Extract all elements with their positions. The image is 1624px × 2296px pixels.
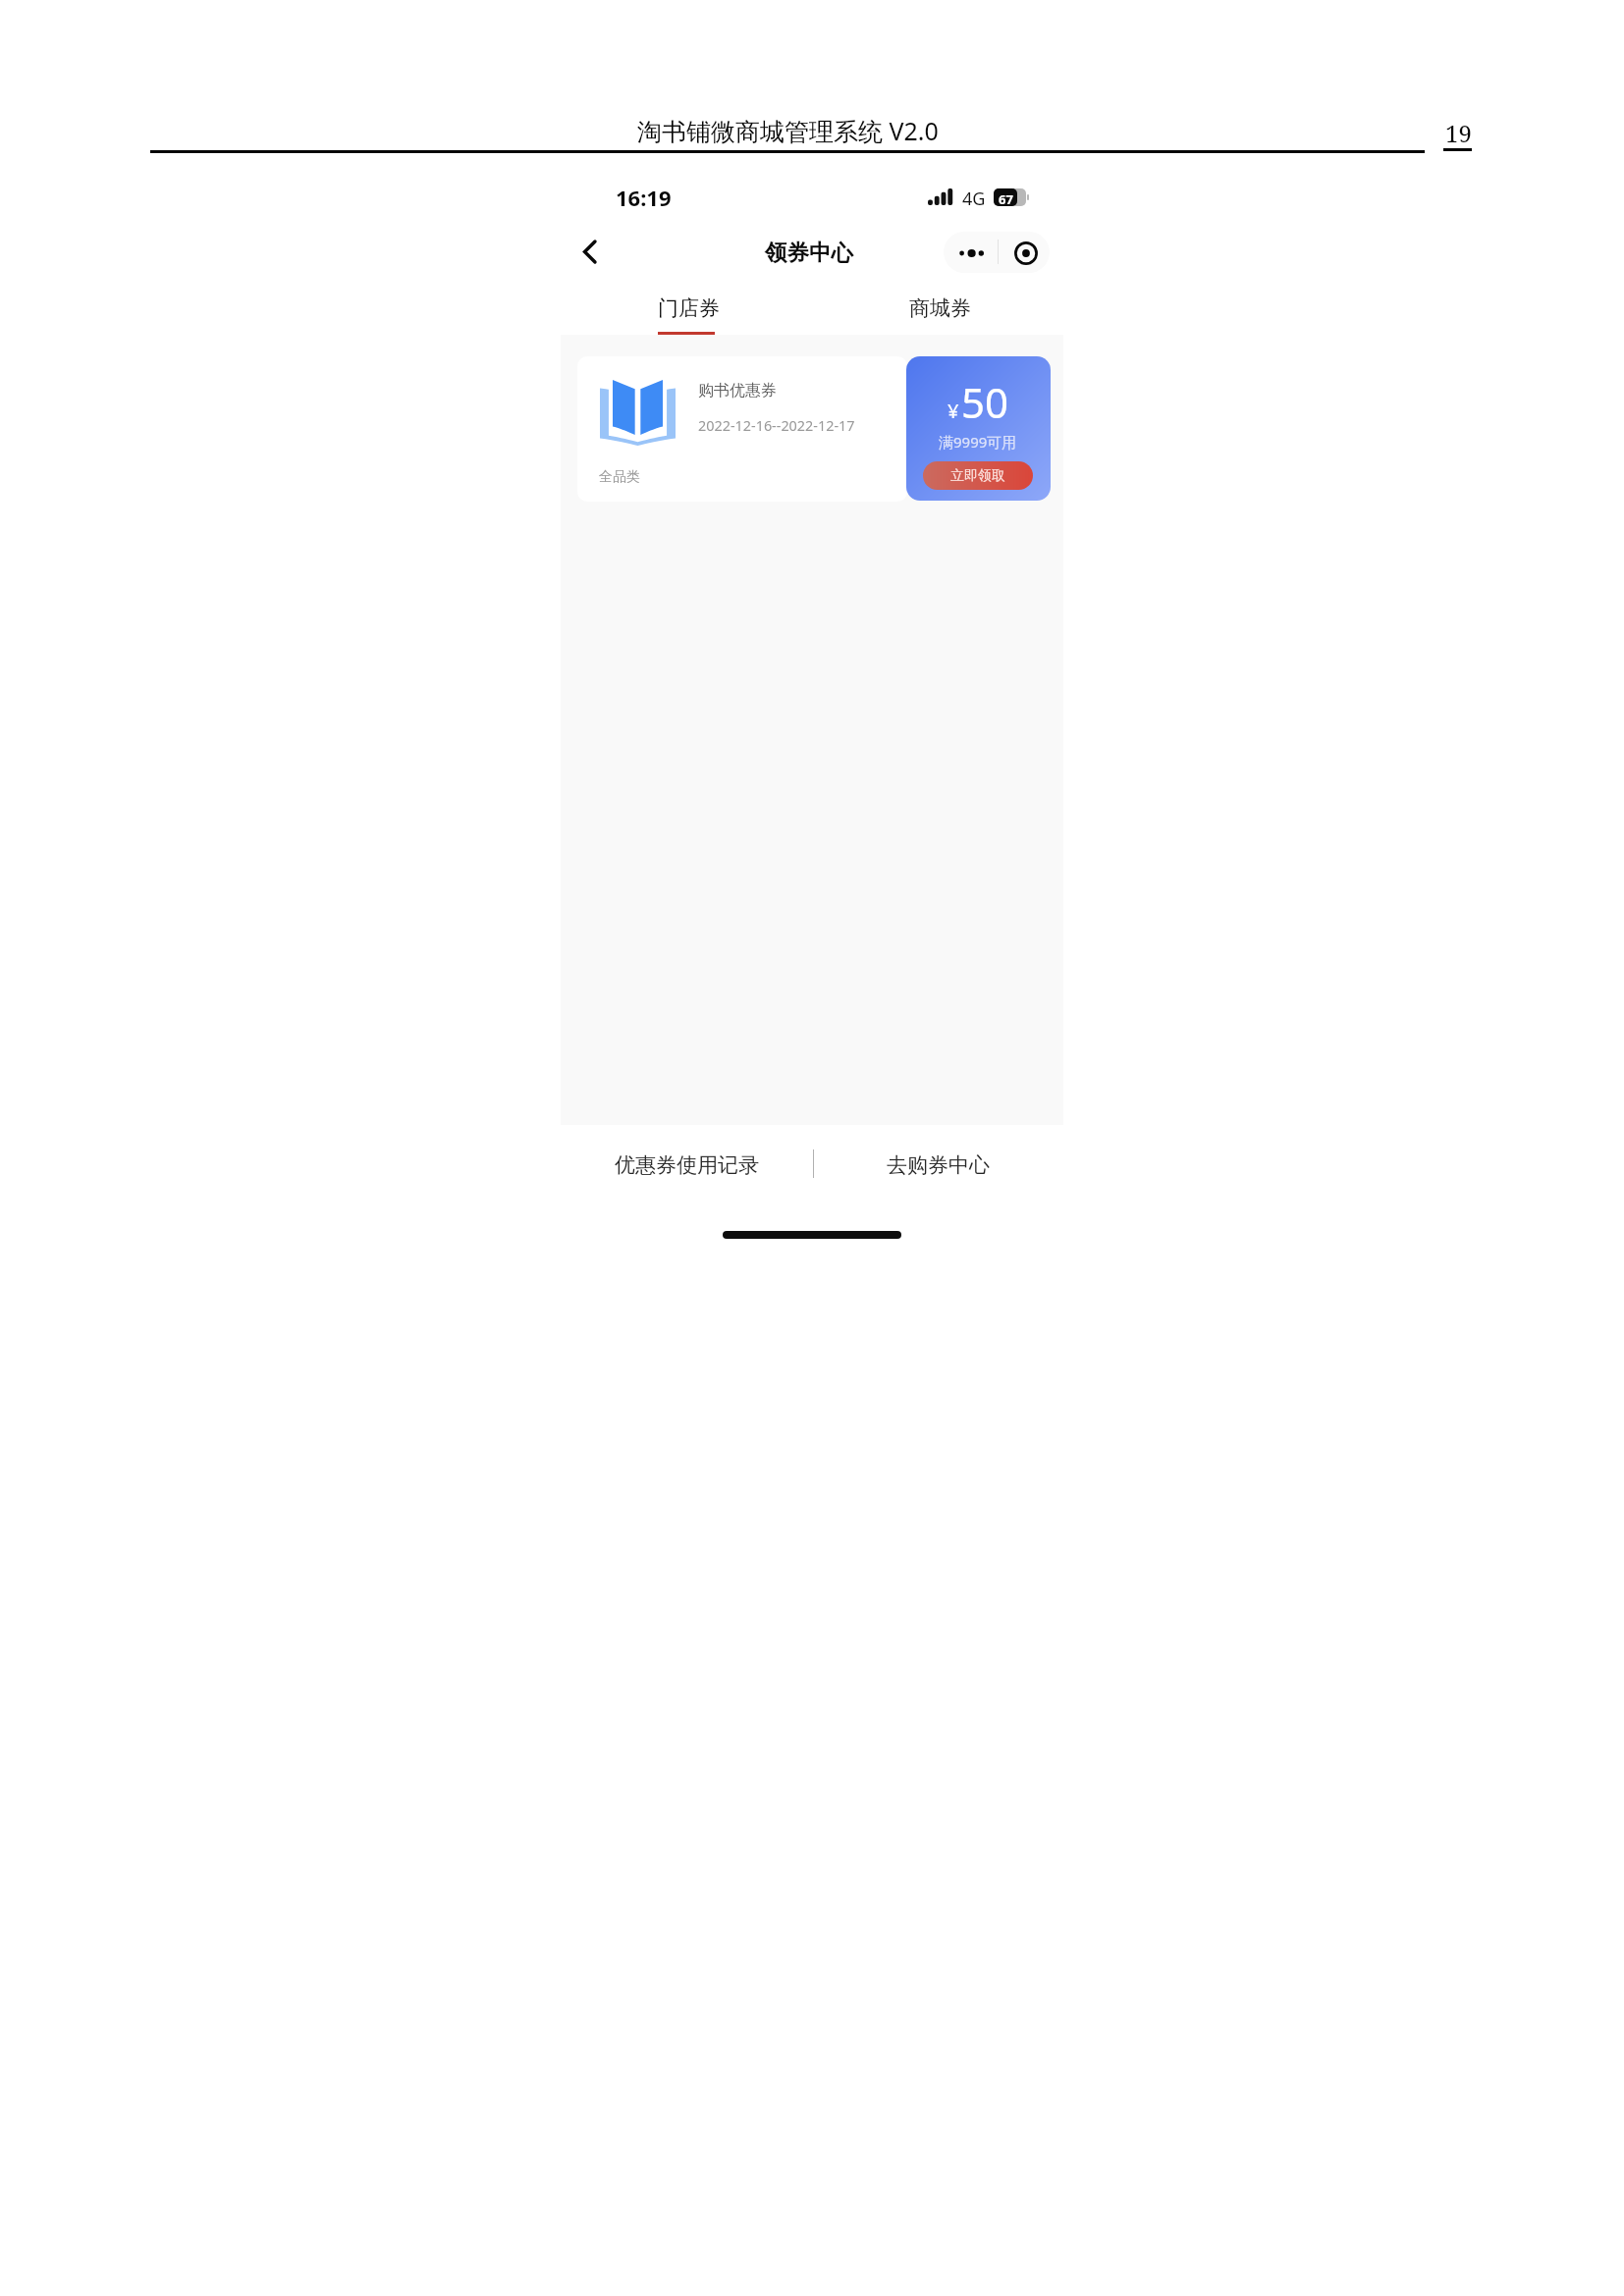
staticText: 67 <box>999 190 1013 208</box>
staticText: 全品类 <box>599 468 640 486</box>
button[interactable]: 优惠券使用记录 <box>596 1144 777 1187</box>
staticText: 优惠券使用记录 <box>615 1152 759 1178</box>
staticText: V2.0 <box>883 114 939 147</box>
other: Battery 67 percent <box>994 188 1029 206</box>
button[interactable]: ¥ <box>906 356 1051 501</box>
staticText: 门店券 <box>658 295 720 321</box>
staticText: 领券中心 <box>765 239 853 266</box>
staticText: 16:19 <box>616 183 672 212</box>
staticText: 淘书铺微商城管理系统 <box>637 117 883 147</box>
staticText: 2022-12-16--2022-12-17 <box>698 416 855 436</box>
button[interactable]: 门店券 <box>620 289 757 335</box>
button[interactable]: Back <box>563 222 608 267</box>
staticText: 19 <box>1445 117 1472 149</box>
staticText: 商城券 <box>909 295 971 321</box>
staticText: 满9999可用 <box>939 432 1017 452</box>
staticText: 去购券中心 <box>887 1152 990 1178</box>
button[interactable]: 去购券中心 <box>874 1144 1001 1187</box>
staticText: 购书优惠券 <box>698 381 777 400</box>
button[interactable]: More options <box>944 232 1050 273</box>
button[interactable]: 购书优惠券 <box>577 356 907 502</box>
staticText: 50 <box>961 374 1009 430</box>
staticText: 4G <box>962 187 986 211</box>
button[interactable]: 立即领取 <box>923 461 1033 490</box>
staticText: ¥ <box>947 398 959 424</box>
button[interactable]: 商城券 <box>870 289 1007 335</box>
staticText: 立即领取 <box>950 467 1005 485</box>
other: Signal strength <box>928 188 953 205</box>
